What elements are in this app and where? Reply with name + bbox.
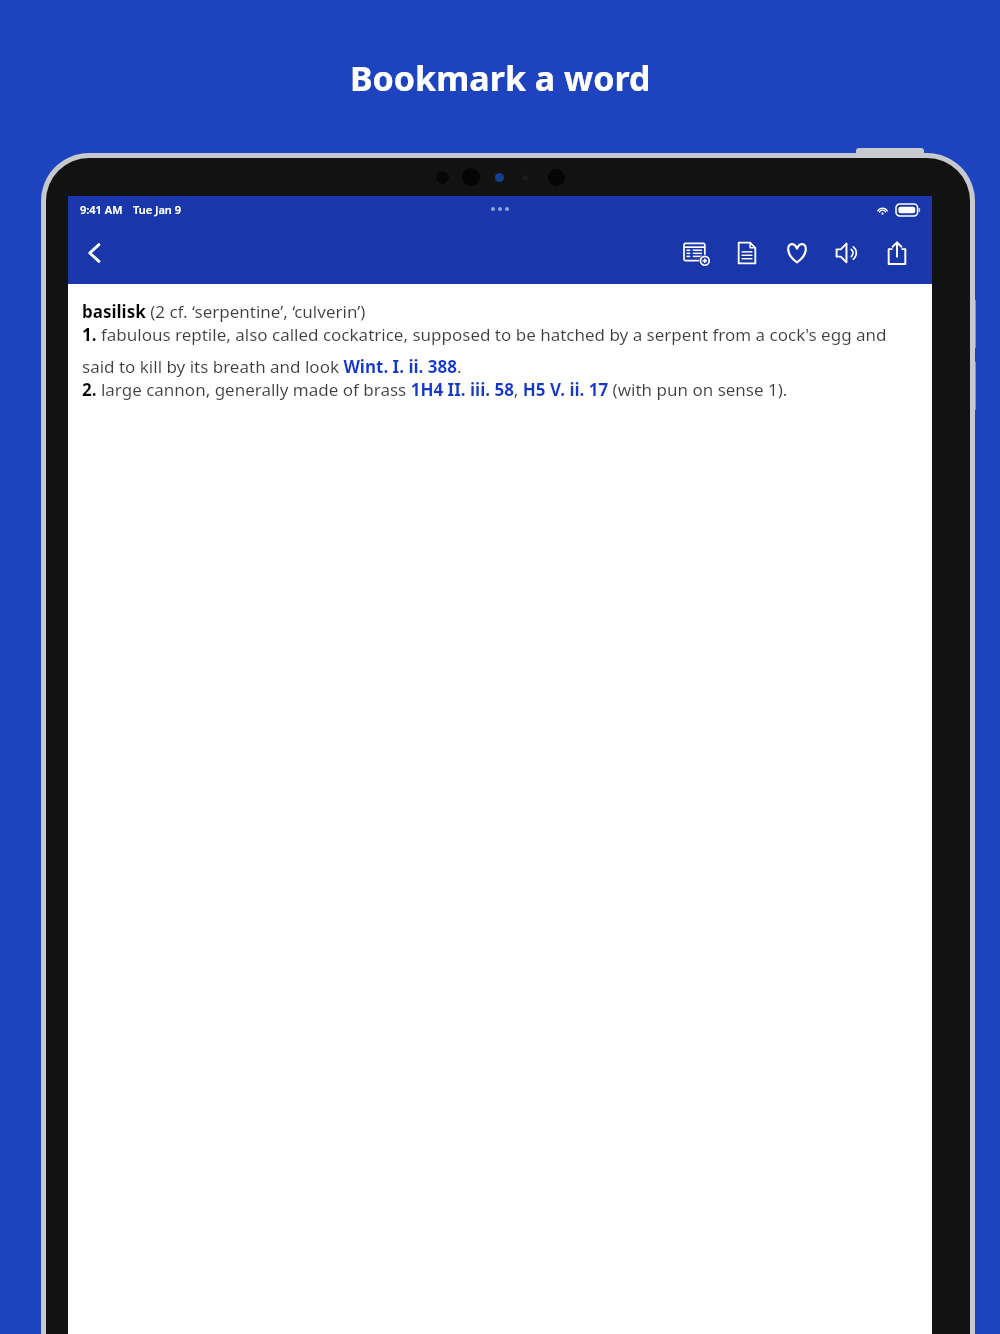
- button[interactable]: Pronounce: [830, 236, 864, 270]
- staticText: Bookmark a word: [350, 55, 651, 101]
- staticText: 9:41 AM: [80, 202, 123, 217]
- button[interactable]: Back: [72, 230, 118, 276]
- staticText: 2. large cannon, generally made of brass…: [82, 378, 788, 401]
- button[interactable]: Share: [880, 236, 914, 270]
- staticText: 1. fabulous reptile, also called cockatr…: [82, 323, 918, 378]
- staticText: basilisk (2 cf. ‘serpentine’, ‘culverin’…: [82, 300, 366, 323]
- button[interactable]: Document: [730, 236, 764, 270]
- button[interactable]: Favorite: [780, 236, 814, 270]
- staticText: Tue Jan 9: [133, 202, 182, 217]
- button[interactable]: Add note: [680, 236, 714, 270]
